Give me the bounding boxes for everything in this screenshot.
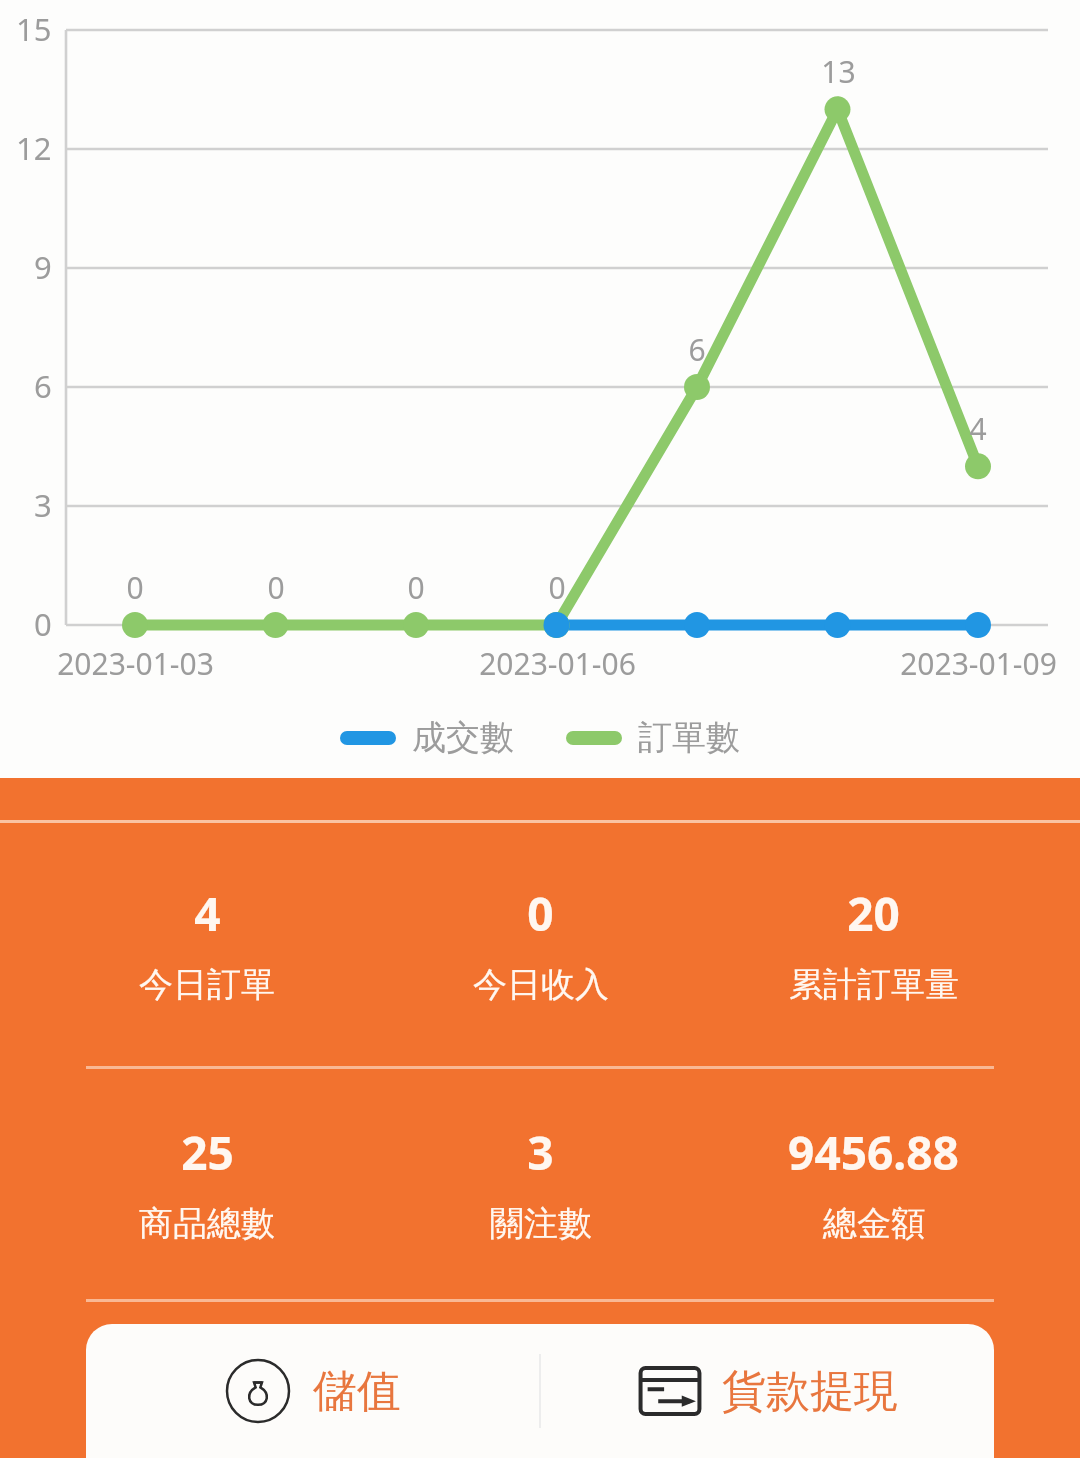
staticText: 2023-01-06 <box>479 643 636 684</box>
staticText: 商品總數 <box>139 1202 275 1245</box>
staticText: 累計訂單量 <box>789 963 959 1006</box>
button[interactable]: 儲值 <box>86 1324 539 1458</box>
button[interactable]: 25 <box>40 1117 374 1249</box>
staticText: 9456.88 <box>788 1121 959 1184</box>
staticText: 0 <box>34 603 52 645</box>
button[interactable]: 3 <box>374 1117 707 1249</box>
staticText: 9 <box>34 246 52 288</box>
staticText: 20 <box>847 882 900 945</box>
staticText: 0 <box>126 567 144 608</box>
staticText: 3 <box>527 1121 554 1184</box>
staticText: 2023-01-09 <box>900 643 1057 684</box>
button[interactable]: 成交數 <box>336 710 518 765</box>
button[interactable]: 貨款提現 <box>541 1324 994 1458</box>
staticText: 4 <box>969 408 987 449</box>
staticText: 3 <box>34 484 52 526</box>
staticText: 今日訂單 <box>139 963 275 1006</box>
button[interactable]: 20 <box>707 878 1040 1010</box>
staticText: 關注數 <box>490 1202 592 1245</box>
staticText: 13 <box>821 51 856 92</box>
staticText: 0 <box>267 567 285 608</box>
staticText: 6 <box>688 329 706 370</box>
staticText: 今日收入 <box>473 963 609 1006</box>
staticText: 貨款提現 <box>722 1364 898 1419</box>
staticText: 總金額 <box>823 1202 925 1245</box>
staticText: 0 <box>548 567 566 608</box>
other: 儲值 <box>225 1358 291 1424</box>
staticText: 成交數 <box>412 716 514 759</box>
staticText: 2023-01-03 <box>57 643 214 684</box>
button[interactable]: 9456.88 <box>707 1117 1040 1249</box>
staticText: 0 <box>407 567 425 608</box>
other: 貨款提現 <box>638 1359 702 1423</box>
button[interactable]: 4 <box>40 878 374 1010</box>
staticText: 4 <box>194 882 221 945</box>
staticText: 儲值 <box>313 1364 401 1419</box>
staticText: 訂單數 <box>638 716 740 759</box>
staticText: 25 <box>181 1121 234 1184</box>
staticText: 0 <box>527 882 554 945</box>
staticText: 15 <box>16 8 52 50</box>
button[interactable]: 訂單數 <box>562 710 744 765</box>
button[interactable]: 0 <box>374 878 707 1010</box>
staticText: 12 <box>16 127 52 169</box>
staticText: 6 <box>34 365 52 407</box>
